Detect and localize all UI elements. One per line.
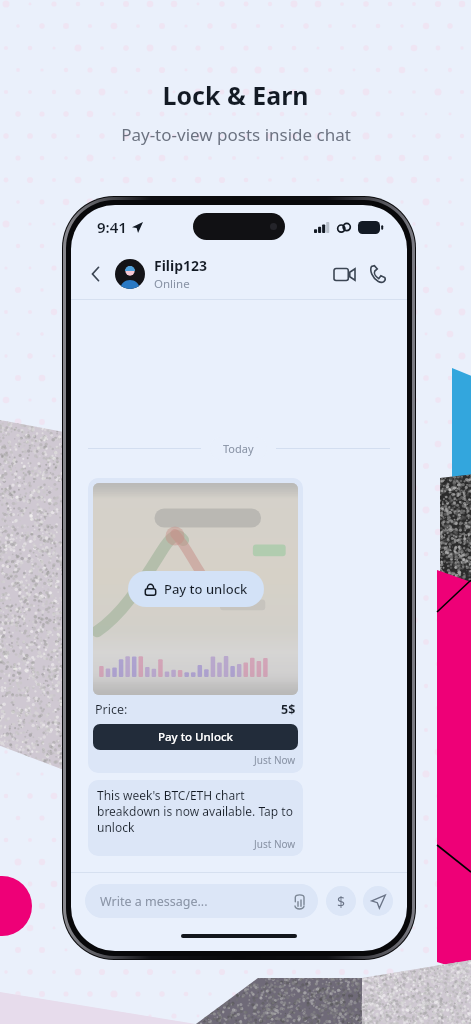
staticText: Today bbox=[223, 441, 254, 456]
button[interactable]: Send bbox=[363, 886, 393, 916]
staticText: 5$ bbox=[281, 701, 296, 718]
other: Attach bbox=[292, 894, 307, 909]
staticText: 9:41 bbox=[97, 217, 127, 237]
button[interactable]: Send money bbox=[326, 886, 356, 916]
staticText: Lock & Earn bbox=[162, 78, 309, 112]
staticText: $ bbox=[337, 892, 346, 911]
staticText: Filip123 bbox=[154, 256, 208, 275]
staticText: Pay to Unlock bbox=[158, 729, 233, 745]
staticText: Just Now bbox=[254, 837, 296, 851]
staticText: Just Now bbox=[254, 753, 296, 767]
staticText: Pay-to-view posts inside chat bbox=[121, 123, 351, 146]
staticText: Write a message... bbox=[100, 893, 208, 910]
button[interactable]: Back bbox=[81, 259, 111, 289]
button[interactable]: Pay to unlock bbox=[128, 571, 264, 607]
button[interactable]: Voice call bbox=[361, 257, 395, 291]
staticText: Online bbox=[154, 276, 190, 292]
staticText: Pay to unlock bbox=[164, 580, 248, 598]
staticText: This week's BTC/ETH chart breakdown is n… bbox=[97, 787, 296, 835]
button[interactable]: Write a message... bbox=[85, 884, 318, 918]
button[interactable]: Pay to Unlock bbox=[93, 724, 298, 750]
button[interactable]: Video call bbox=[327, 257, 361, 291]
staticText: Price: bbox=[95, 701, 128, 718]
